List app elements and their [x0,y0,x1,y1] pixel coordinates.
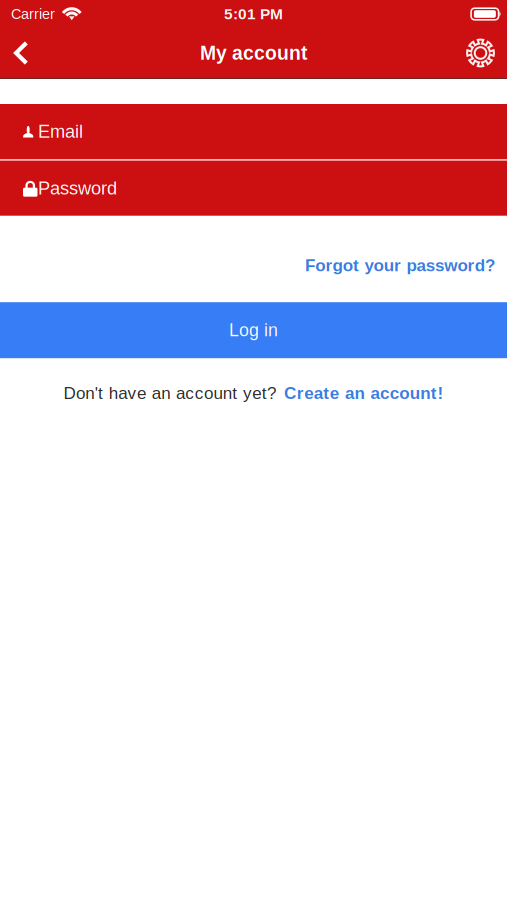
staticText: Email [38,121,83,142]
staticText: Create an account! [284,384,443,403]
button[interactable]: Settings [451,28,507,78]
staticText: My account [200,42,307,64]
button[interactable]: Forgot your password? [305,243,507,275]
staticText: Log in [229,320,278,340]
button[interactable]: Password [0,161,507,216]
staticText: 5:01 PM [224,5,283,23]
staticText: Don't have an account yet? [64,384,276,403]
staticText: Carrier [11,6,55,22]
staticText: Password [38,178,117,198]
button[interactable]: Back [0,28,56,78]
button[interactable]: Log in [0,302,507,358]
button[interactable]: Create an account! [284,384,443,403]
button[interactable]: Email [0,104,507,159]
staticText: Forgot your password? [305,256,495,275]
